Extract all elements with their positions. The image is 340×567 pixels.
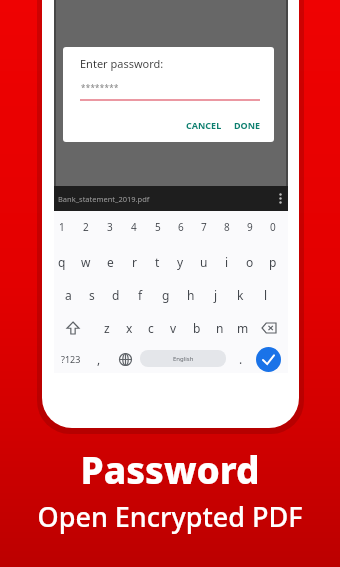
staticText: 5 [155, 220, 161, 234]
button[interactable]: v [162, 316, 185, 340]
staticText: h [187, 287, 195, 303]
staticText: i [225, 254, 229, 270]
staticText: r [132, 254, 137, 270]
button[interactable]: 8 [215, 216, 238, 238]
button[interactable]: b [185, 316, 208, 340]
button[interactable]: y [169, 250, 192, 274]
staticText: n [216, 320, 224, 336]
staticText: f [138, 287, 143, 303]
button[interactable]: z [96, 316, 118, 340]
button[interactable]: t [146, 250, 169, 274]
button[interactable]: 7 [192, 216, 215, 238]
staticText: v [170, 320, 177, 336]
staticText: s [89, 287, 95, 303]
button[interactable]: i [215, 250, 238, 274]
staticText: Password [0, 444, 340, 494]
staticText: . [239, 351, 243, 367]
staticText: c [148, 320, 154, 336]
staticText: x [126, 320, 133, 336]
staticText: 1 [59, 220, 65, 234]
button[interactable]: r [122, 250, 146, 274]
staticText: j [214, 287, 218, 303]
button[interactable]: u [192, 250, 215, 274]
button[interactable] [50, 316, 96, 340]
staticText: y [177, 254, 184, 270]
button[interactable]: 0 [261, 216, 284, 238]
button[interactable]: CANCEL [186, 119, 222, 131]
button[interactable]: a [56, 283, 80, 307]
button[interactable]: ?123 [56, 346, 86, 372]
staticText: p [269, 254, 277, 270]
button[interactable]: l [253, 283, 278, 307]
staticText: u [200, 254, 208, 270]
button[interactable]: 3 [98, 216, 122, 238]
staticText: 7 [201, 220, 207, 234]
button[interactable]: w [74, 250, 98, 274]
button[interactable] [114, 346, 136, 372]
button[interactable]: . [234, 346, 248, 372]
staticText: 0 [270, 220, 276, 234]
staticText: o [246, 254, 254, 270]
button[interactable]: j [203, 283, 228, 307]
staticText: Bank_statement_2019.pdf [58, 194, 150, 204]
staticText: g [162, 287, 170, 303]
staticText: CANCEL [186, 119, 222, 131]
button[interactable]: 2 [74, 216, 98, 238]
staticText: t [155, 254, 160, 270]
button[interactable]: n [208, 316, 231, 340]
button[interactable]: f [128, 283, 153, 307]
button[interactable] [254, 316, 284, 340]
staticText: 9 [247, 220, 253, 234]
button[interactable]: q [50, 250, 74, 274]
staticText: a [65, 287, 72, 303]
staticText: 4 [131, 220, 137, 234]
button[interactable]: 6 [169, 216, 192, 238]
staticText: e [107, 254, 114, 270]
button[interactable]: s [80, 283, 104, 307]
button[interactable]: 1 [50, 216, 74, 238]
staticText: , [97, 351, 101, 367]
button[interactable] [256, 347, 281, 372]
staticText: z [104, 320, 110, 336]
staticText: Open Encrypted PDF [0, 498, 340, 535]
staticText: 3 [107, 220, 113, 234]
button[interactable]: 4 [122, 216, 146, 238]
staticText: 2 [83, 220, 89, 234]
button[interactable]: d [104, 283, 128, 307]
button[interactable]: p [261, 250, 284, 274]
button[interactable]: g [153, 283, 178, 307]
staticText: w [81, 254, 91, 270]
button[interactable]: 9 [238, 216, 261, 238]
staticText: b [193, 320, 201, 336]
staticText: q [58, 254, 66, 270]
button[interactable]: e [98, 250, 122, 274]
staticText: Enter password: [80, 56, 164, 71]
staticText: 6 [178, 220, 184, 234]
staticText: DONE [234, 119, 261, 131]
staticText: 8 [224, 220, 230, 234]
staticText: k [237, 287, 244, 303]
button[interactable]: English [140, 350, 226, 367]
staticText: m [237, 320, 249, 336]
button[interactable]: , [92, 346, 106, 372]
button[interactable]: m [231, 316, 254, 340]
staticText: English [173, 355, 194, 363]
button[interactable]: x [118, 316, 140, 340]
button[interactable]: c [140, 316, 162, 340]
staticText: ******** [81, 82, 119, 93]
button[interactable]: 5 [146, 216, 169, 238]
button[interactable]: o [238, 250, 261, 274]
staticText: l [264, 287, 268, 303]
button[interactable]: h [178, 283, 203, 307]
staticText: d [112, 287, 120, 303]
button[interactable]: k [228, 283, 253, 307]
button[interactable]: DONE [234, 119, 261, 131]
staticText: ?123 [61, 353, 81, 365]
